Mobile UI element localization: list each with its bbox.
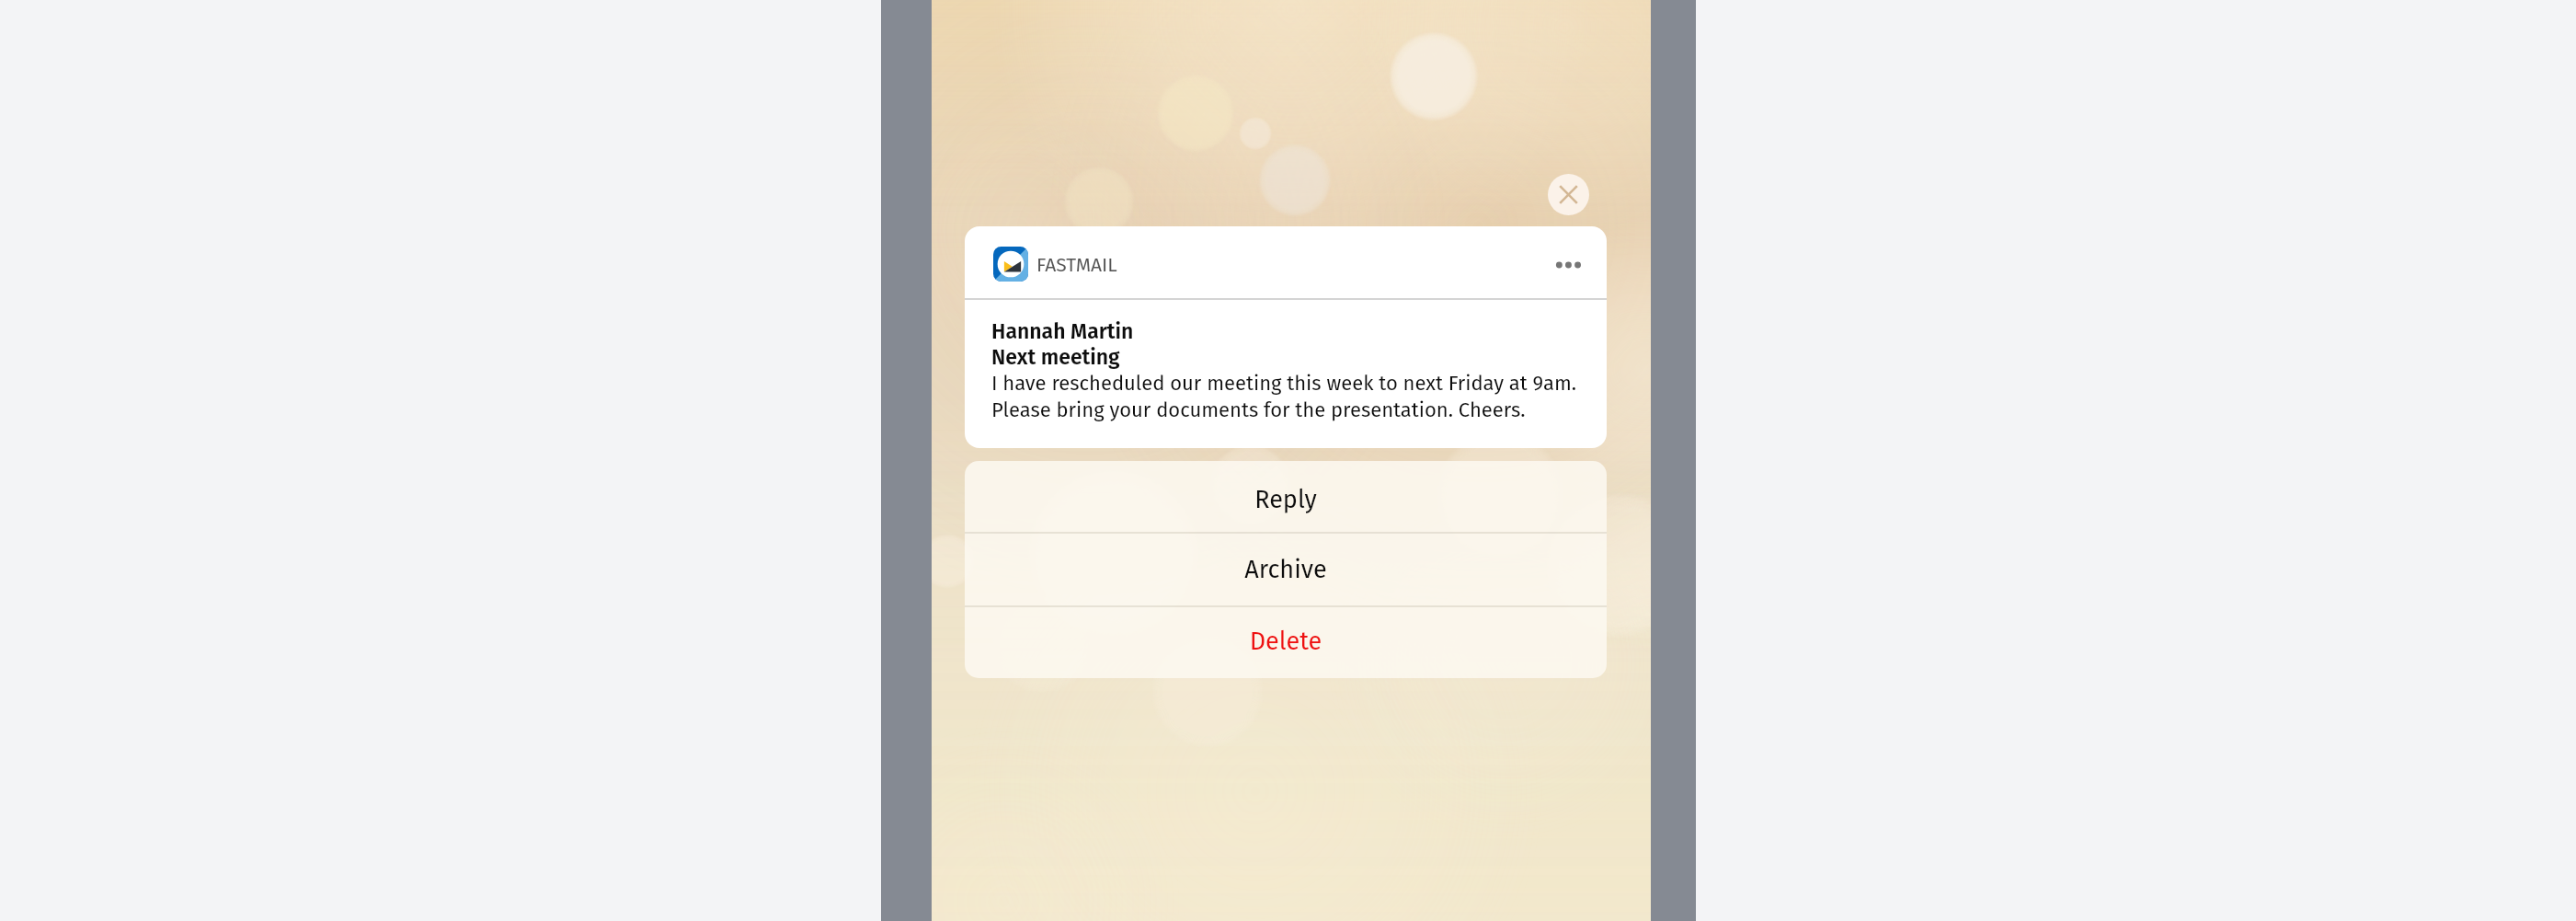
button[interactable]: More options [1550, 252, 1581, 278]
button[interactable]: Delete [965, 607, 1607, 678]
button[interactable]: Reply [965, 461, 1607, 532]
staticText: Hannah Martin Next meeting [991, 318, 1134, 370]
staticText: Reply [965, 485, 1607, 514]
button[interactable]: Dismiss notification [1548, 174, 1589, 215]
staticText: Archive [965, 555, 1607, 584]
button[interactable]: FASTMAIL [965, 226, 1607, 448]
button[interactable]: Archive [965, 534, 1607, 606]
staticText: I have rescheduled our meeting this week… [991, 369, 1577, 422]
staticText: FASTMAIL [1036, 253, 1117, 276]
staticText: Delete [965, 627, 1607, 656]
